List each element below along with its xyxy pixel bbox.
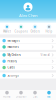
- staticText: Settings: [7, 74, 18, 77]
- staticText: Cart: [32, 95, 37, 98]
- button[interactable]: Help: [42, 24, 56, 33]
- button[interactable]: History: [0, 58, 56, 64]
- staticText: Cards: [7, 66, 14, 69]
- button[interactable]: Coupons: [14, 24, 28, 33]
- button[interactable]: Messages: [0, 38, 56, 44]
- staticText: Messages: [7, 39, 19, 42]
- staticText: Orders: [30, 30, 39, 33]
- button[interactable]: Me: [42, 91, 56, 98]
- staticText: My Orders: [7, 53, 20, 57]
- button[interactable]: Wallet: [0, 24, 14, 33]
- staticText: Favorites: [7, 45, 18, 49]
- staticText: History: [7, 59, 16, 63]
- button[interactable]: Orders: [28, 24, 42, 33]
- staticText: Home: [3, 95, 11, 98]
- staticText: View all: [40, 53, 50, 57]
- button[interactable]: Discover: [14, 91, 28, 98]
- staticText: Coupons: [14, 30, 27, 33]
- staticText: Alex Chen: [19, 13, 37, 18]
- staticText: Discover: [15, 95, 26, 98]
- button[interactable]: Favorites: [0, 44, 56, 50]
- staticText: Me: [47, 95, 51, 98]
- button[interactable]: Cart: [28, 91, 42, 98]
- staticText: Help: [45, 30, 52, 33]
- button[interactable]: Settings: [0, 72, 56, 78]
- button[interactable]: Home: [0, 91, 14, 98]
- button[interactable]: Cards: [0, 64, 56, 70]
- button[interactable]: My Orders: [0, 52, 56, 58]
- staticText: Wallet: [3, 30, 11, 33]
